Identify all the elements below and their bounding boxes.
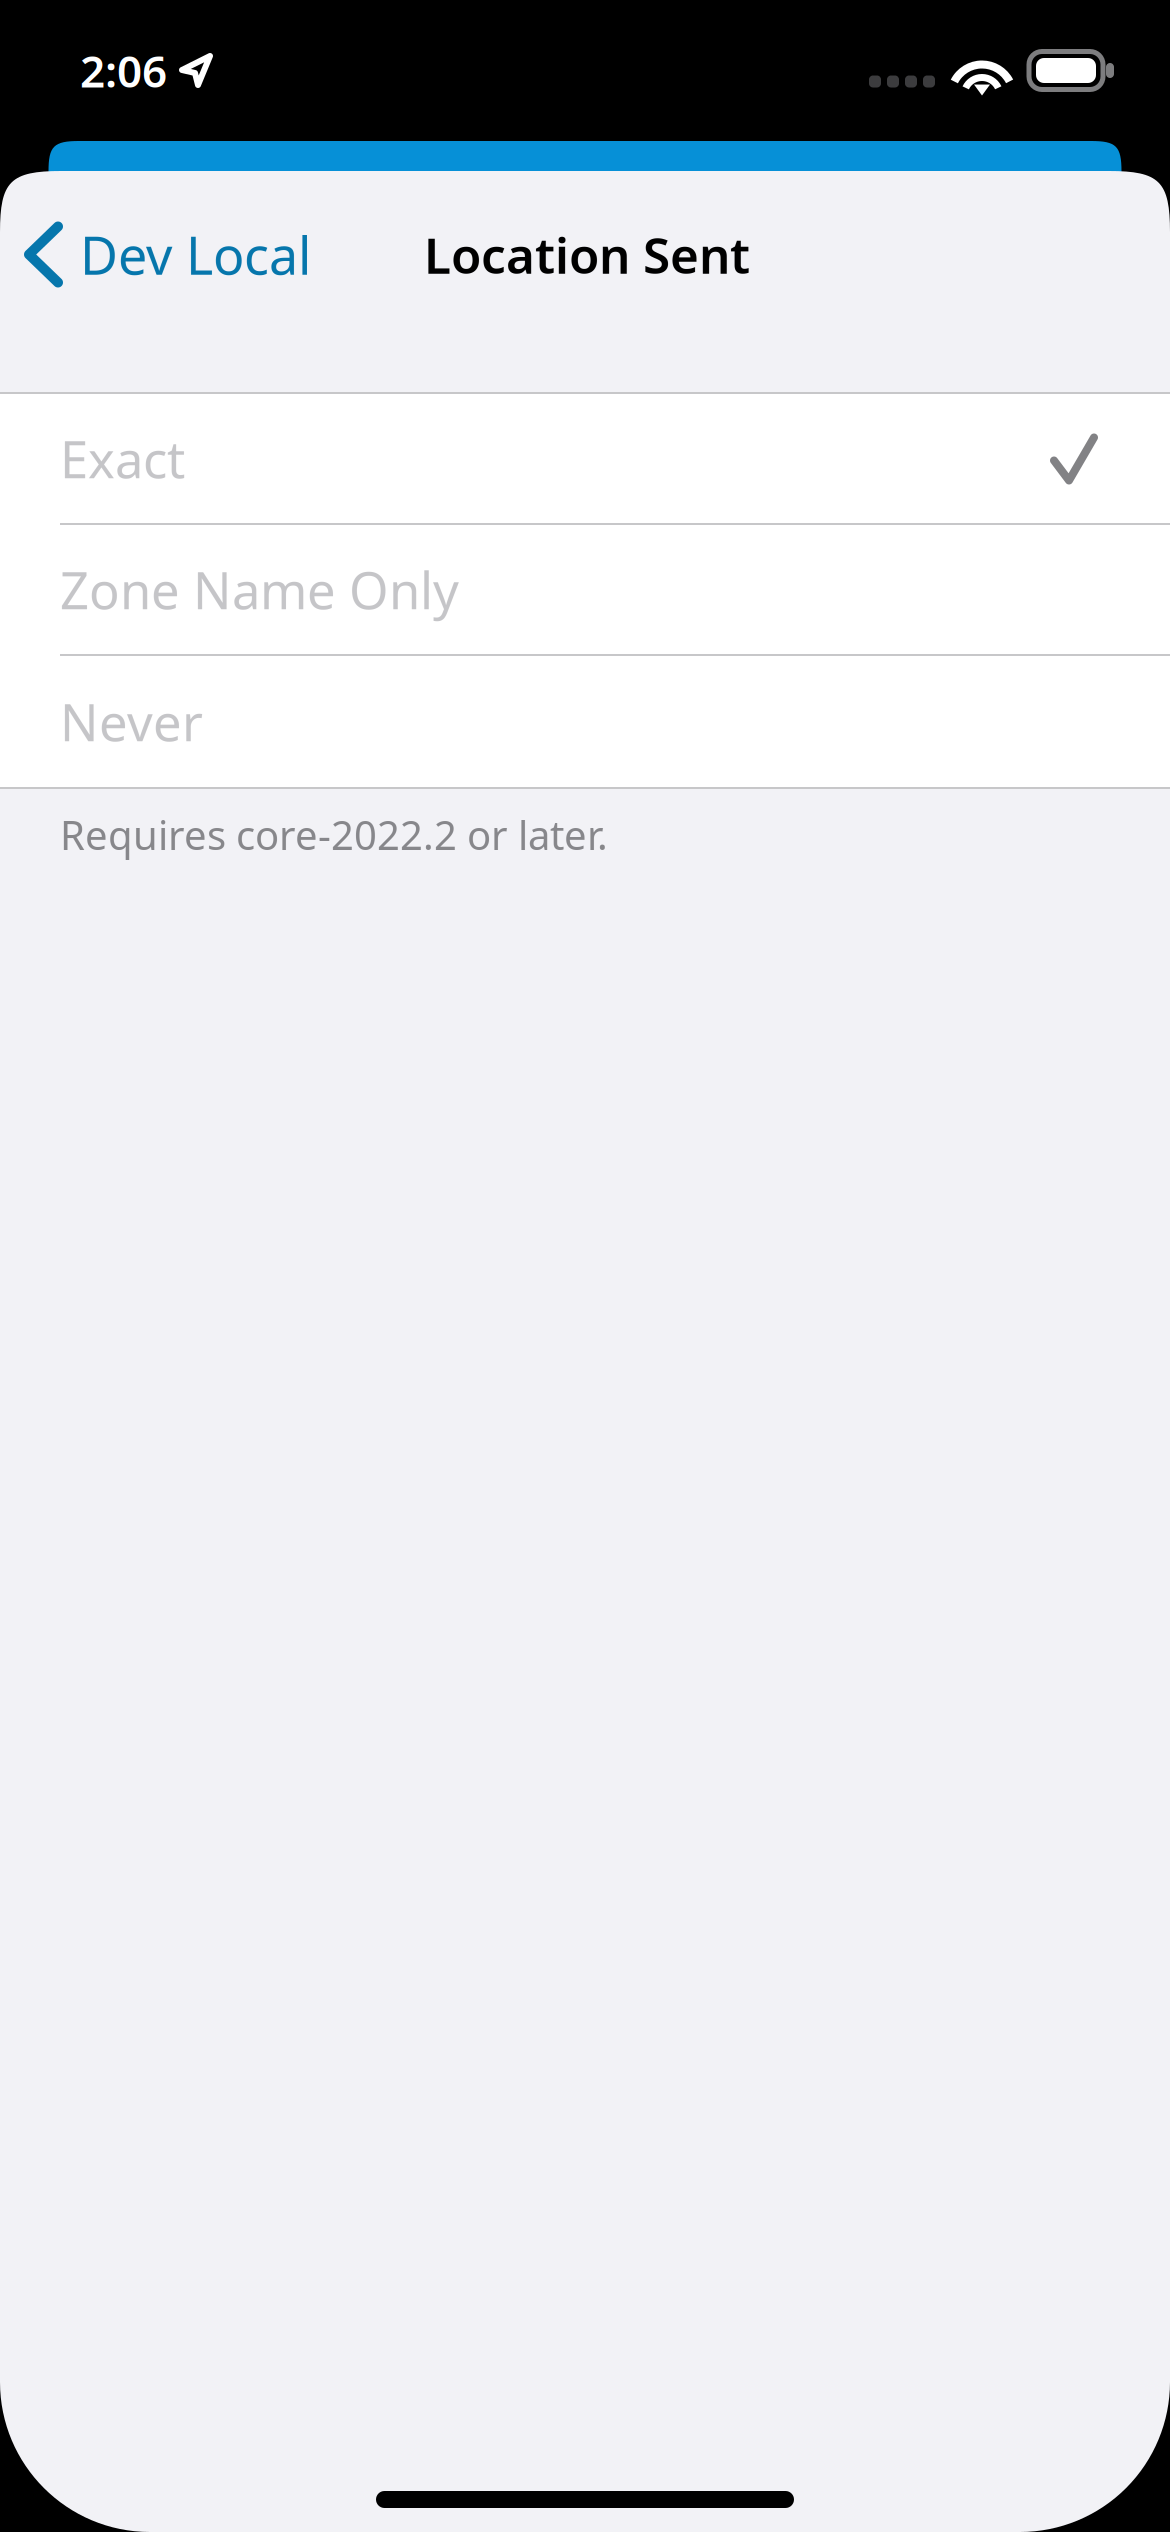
staticText: Zone Name Only xyxy=(60,556,459,623)
staticText: Exact xyxy=(60,425,185,492)
button[interactable]: Zone Name Only xyxy=(0,525,1170,656)
staticText: Dev Local xyxy=(80,220,311,289)
staticText: Never xyxy=(60,688,203,755)
button[interactable]: Exact xyxy=(0,394,1170,525)
staticText: Location Sent xyxy=(424,222,750,287)
button[interactable]: Back to Dev Local xyxy=(0,206,327,303)
button[interactable]: Never xyxy=(0,656,1170,787)
staticText: 2:06 xyxy=(80,41,167,100)
staticText: Requires core-2022.2 or later. xyxy=(60,808,608,861)
